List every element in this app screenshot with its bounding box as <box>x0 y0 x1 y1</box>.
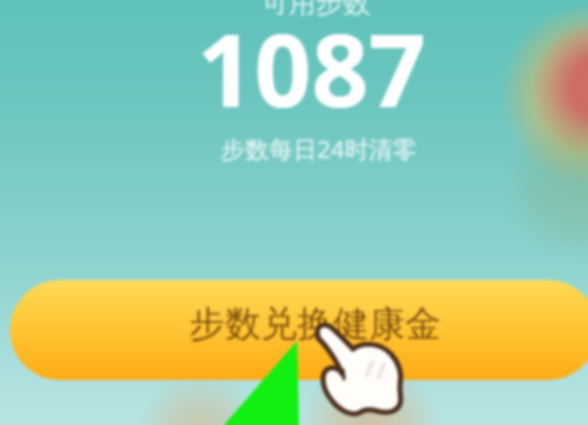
staticText: 步数兑换健康金 <box>189 301 441 346</box>
staticText: 步数每日24时清零 <box>221 132 417 165</box>
other: Tap pointer <box>0 0 588 425</box>
staticText: 1087 <box>197 0 426 136</box>
staticText: 可用步数 <box>262 0 370 20</box>
button[interactable]: 步数兑换健康金 <box>10 280 588 380</box>
